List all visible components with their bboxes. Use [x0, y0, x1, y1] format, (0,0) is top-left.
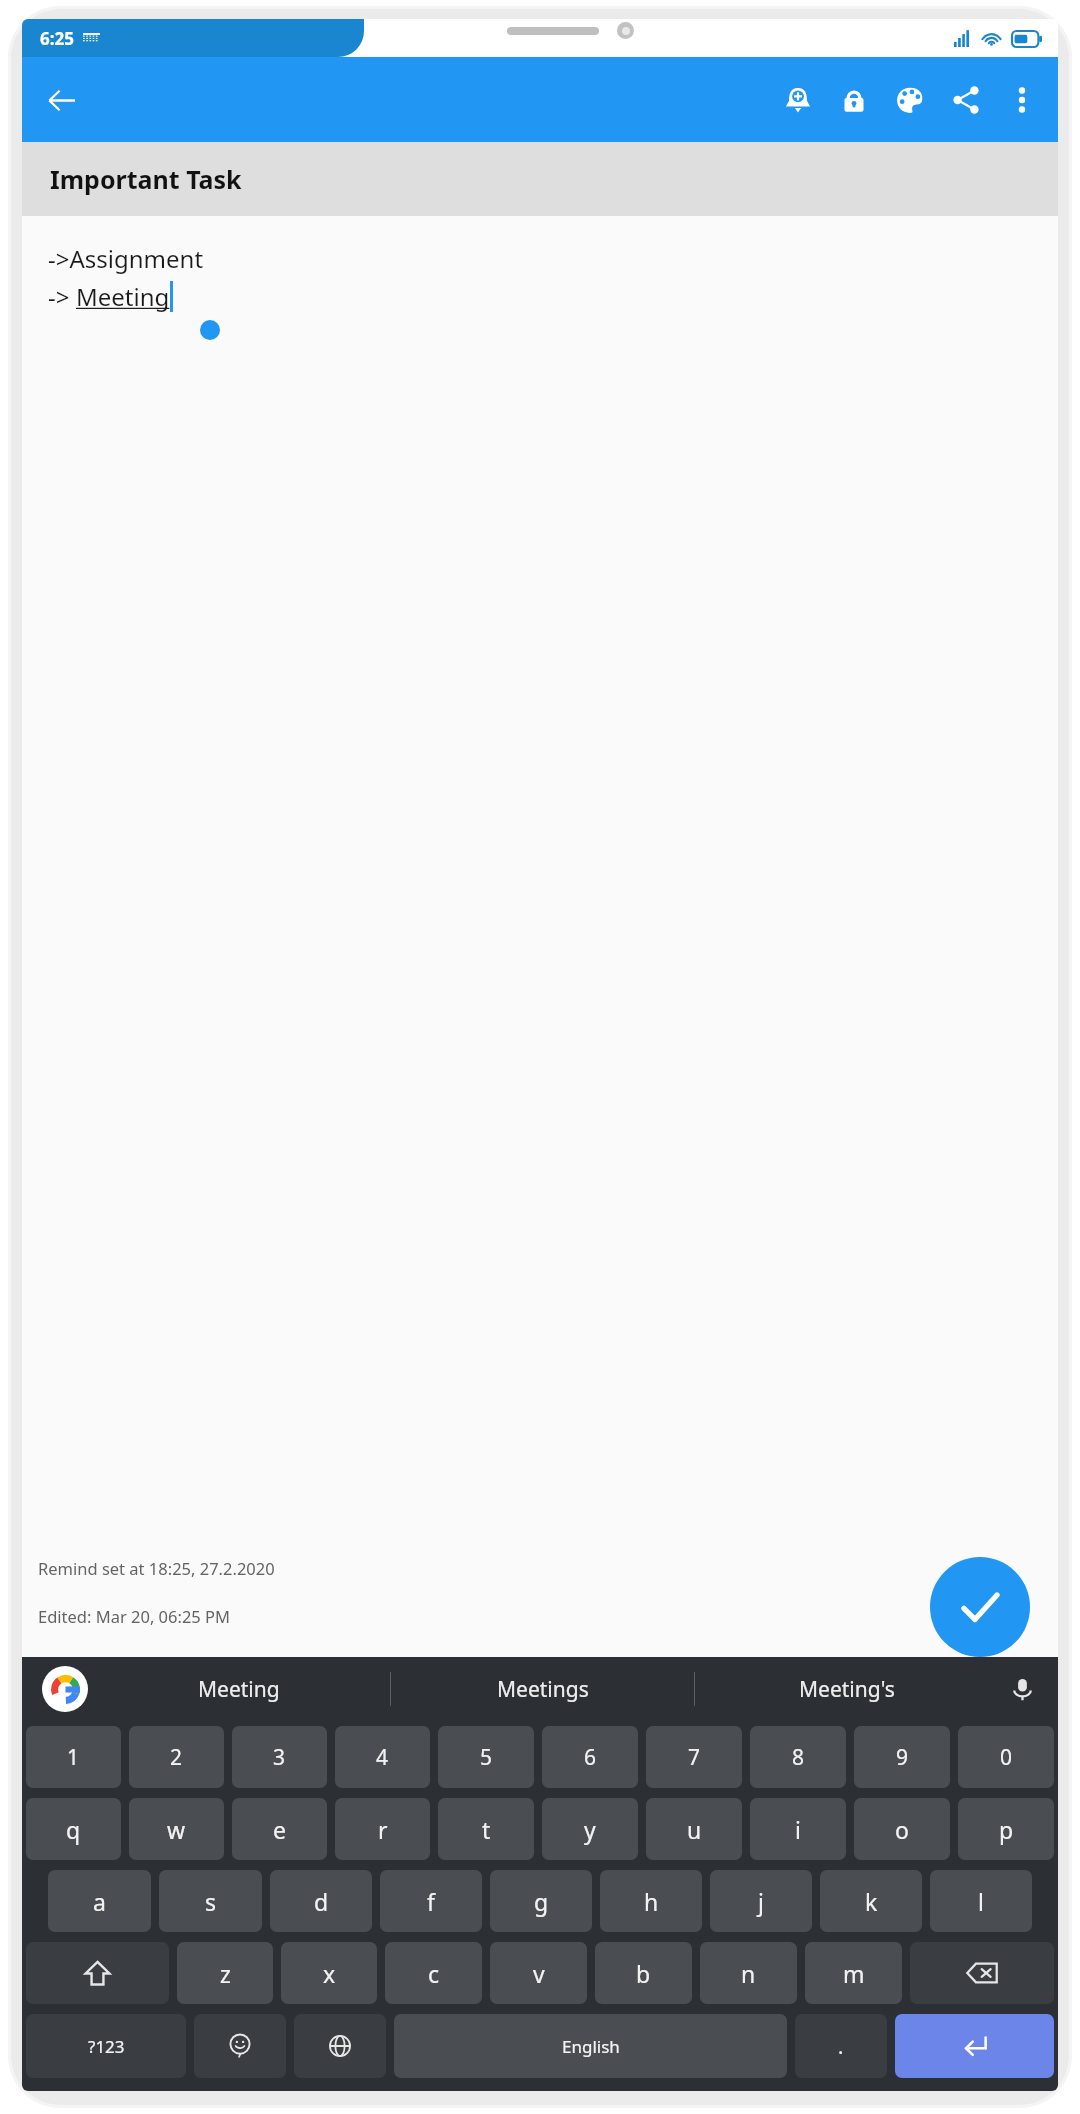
button[interactable]: m — [805, 1942, 902, 2004]
button[interactable]: n — [700, 1942, 797, 2004]
staticText: ?123 — [88, 2035, 125, 2058]
button[interactable]: 7 — [646, 1726, 742, 1788]
button[interactable]: z — [177, 1942, 273, 2004]
button[interactable]: English — [394, 2014, 787, 2078]
button[interactable]: f — [380, 1870, 482, 1932]
staticText: p — [999, 1814, 1014, 1845]
staticText: o — [895, 1814, 909, 1845]
staticText: f — [427, 1886, 435, 1917]
button[interactable]: b — [595, 1942, 692, 2004]
staticText: 7 — [688, 1743, 701, 1772]
button[interactable]: Google search — [42, 1666, 88, 1712]
staticText: ->Assignment — [48, 242, 204, 275]
staticText: 9 — [896, 1743, 909, 1772]
button[interactable]: 5 — [438, 1726, 534, 1788]
staticText: r — [378, 1814, 388, 1845]
button[interactable]: i — [750, 1798, 846, 1860]
button[interactable]: Share — [938, 72, 994, 128]
button[interactable]: Enter — [895, 2014, 1054, 2078]
staticText: w — [167, 1814, 186, 1845]
button[interactable]: r — [335, 1798, 430, 1860]
staticText: c — [428, 1958, 440, 1989]
staticText: h — [644, 1886, 659, 1917]
staticText: s — [205, 1886, 217, 1917]
button[interactable]: h — [600, 1870, 702, 1932]
button[interactable]: Backspace — [910, 1942, 1054, 2004]
button[interactable]: y — [542, 1798, 638, 1860]
button[interactable]: t — [438, 1798, 534, 1860]
button[interactable]: a — [48, 1870, 151, 1932]
staticText: j — [758, 1886, 764, 1917]
button[interactable]: x — [281, 1942, 377, 2004]
button[interactable]: j — [710, 1870, 812, 1932]
button[interactable]: u — [646, 1798, 742, 1860]
staticText: n — [741, 1958, 756, 1989]
button[interactable]: Shift — [26, 1942, 169, 2004]
button[interactable]: q — [26, 1798, 121, 1860]
staticText: 1 — [67, 1743, 80, 1772]
button[interactable]: w — [129, 1798, 224, 1860]
button[interactable]: 3 — [232, 1726, 327, 1788]
button[interactable]: 1 — [26, 1726, 121, 1788]
staticText: . — [838, 2033, 844, 2060]
button[interactable]: Meeting — [88, 1657, 390, 1721]
button[interactable]: l — [930, 1870, 1032, 1932]
button[interactable]: 0 — [958, 1726, 1054, 1788]
staticText: Meetings — [497, 1675, 589, 1704]
staticText: u — [687, 1814, 702, 1845]
button[interactable]: ->Assignment — [22, 216, 1058, 1657]
button[interactable]: c — [385, 1942, 482, 2004]
staticText: 6 — [584, 1743, 597, 1772]
button[interactable]: Meetings — [391, 1657, 694, 1721]
staticText: x — [323, 1958, 336, 1989]
staticText: y — [584, 1814, 596, 1845]
button[interactable]: Voice input — [998, 1665, 1046, 1713]
staticText: g — [534, 1886, 549, 1917]
staticText: a — [93, 1886, 106, 1917]
staticText: 3 — [273, 1743, 286, 1772]
staticText: 4 — [376, 1743, 389, 1772]
button[interactable]: k — [820, 1870, 922, 1932]
staticText: 2 — [170, 1743, 183, 1772]
staticText: Important Task — [50, 162, 242, 196]
staticText: 8 — [792, 1743, 805, 1772]
button[interactable]: 4 — [335, 1726, 430, 1788]
staticText: Meeting — [76, 280, 170, 313]
button[interactable]: ?123 — [26, 2014, 186, 2078]
button[interactable]: Lock note — [826, 72, 882, 128]
staticText: v — [533, 1958, 545, 1989]
button[interactable]: Emoji — [194, 2014, 286, 2078]
button[interactable]: e — [232, 1798, 327, 1860]
staticText: b — [636, 1958, 651, 1989]
button[interactable]: Back — [34, 73, 88, 127]
button[interactable]: Important Task — [22, 142, 1058, 216]
staticText: Remind set at 18:25, 27.2.2020 — [38, 1557, 275, 1579]
staticText: 5 — [480, 1743, 493, 1772]
button[interactable]: Change colour — [882, 72, 938, 128]
button[interactable]: Change language — [294, 2014, 386, 2078]
button[interactable]: Add reminder — [770, 72, 826, 128]
staticText: Meeting's — [799, 1675, 895, 1704]
staticText: Edited: Mar 20, 06:25 PM — [38, 1605, 231, 1627]
button[interactable]: More options — [994, 72, 1050, 128]
staticText: e — [273, 1814, 286, 1845]
staticText: i — [795, 1814, 801, 1845]
button[interactable]: d — [270, 1870, 372, 1932]
staticText: k — [865, 1886, 878, 1917]
button[interactable]: 2 — [129, 1726, 224, 1788]
staticText: z — [220, 1958, 231, 1989]
button[interactable]: o — [854, 1798, 950, 1860]
staticText: 0 — [1000, 1743, 1013, 1772]
button[interactable]: 9 — [854, 1726, 950, 1788]
button[interactable]: g — [490, 1870, 592, 1932]
button[interactable]: 6 — [542, 1726, 638, 1788]
button[interactable]: 8 — [750, 1726, 846, 1788]
button[interactable]: Meeting's — [695, 1657, 998, 1721]
staticText: Meeting — [198, 1675, 280, 1704]
button[interactable]: p — [958, 1798, 1054, 1860]
button[interactable]: s — [159, 1870, 262, 1932]
button[interactable]: Save note — [930, 1557, 1030, 1657]
staticText: English — [562, 2035, 620, 2058]
button[interactable]: v — [490, 1942, 587, 2004]
button[interactable]: . — [795, 2014, 887, 2078]
